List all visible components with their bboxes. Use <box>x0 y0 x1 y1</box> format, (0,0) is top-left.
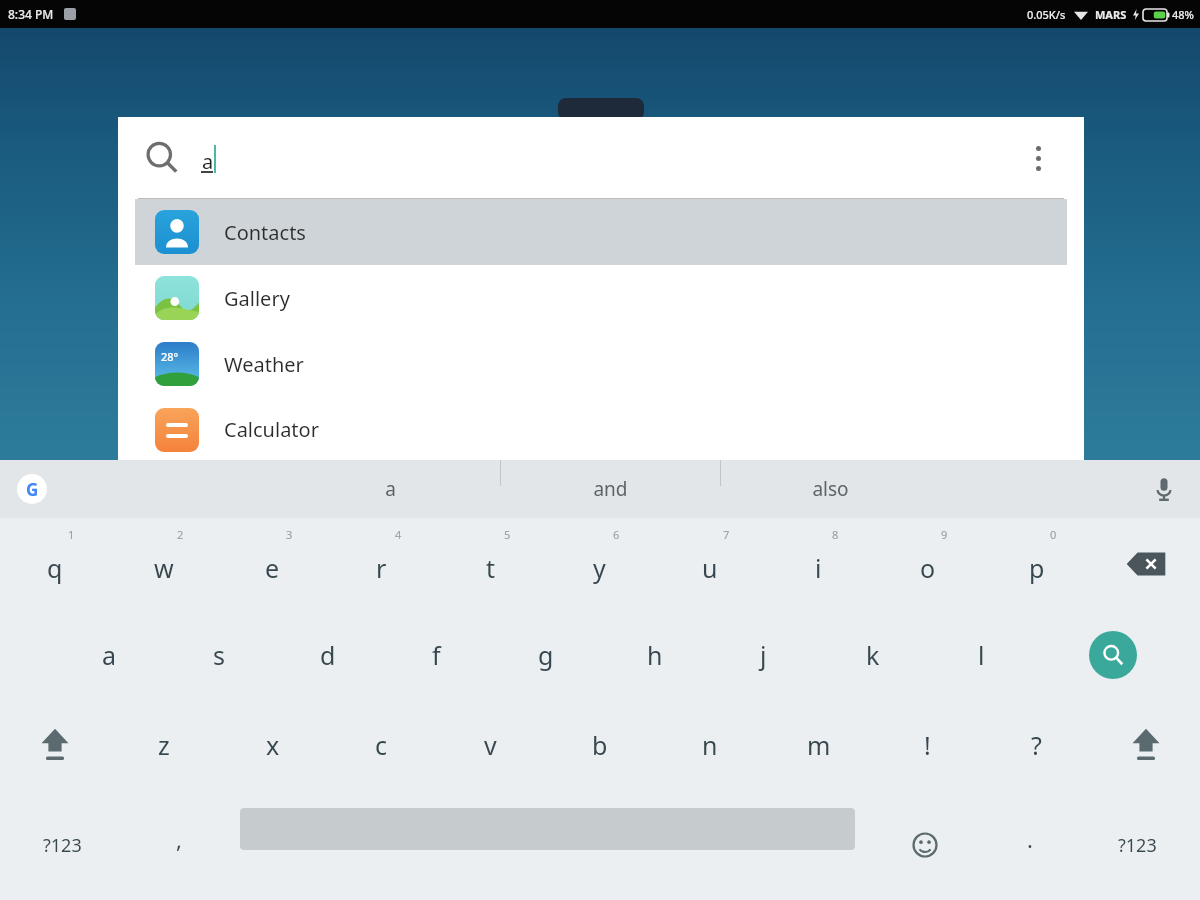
staticText: o <box>920 551 936 585</box>
staticText: t <box>486 551 496 585</box>
staticText: z <box>158 728 170 762</box>
button[interactable]: g <box>491 610 600 700</box>
staticText: 28° <box>161 349 179 364</box>
staticText: l <box>978 638 985 672</box>
button[interactable]: More options <box>1030 140 1047 177</box>
staticText: and <box>593 476 628 502</box>
staticText: j <box>760 638 767 672</box>
staticText: r <box>376 551 387 585</box>
button[interactable]: l <box>927 610 1036 700</box>
button[interactable]: p <box>982 518 1091 610</box>
staticText: Weather <box>224 351 304 378</box>
staticText: s <box>213 638 225 672</box>
staticText: a <box>385 476 396 502</box>
staticText: e <box>265 551 280 585</box>
button[interactable]: c <box>327 700 436 790</box>
staticText: p <box>1029 551 1045 585</box>
staticText: y <box>593 551 606 585</box>
staticText: 48% <box>1172 7 1194 22</box>
button[interactable]: Search <box>1058 610 1167 700</box>
other: Search <box>145 141 179 175</box>
button[interactable]: u <box>655 518 764 610</box>
button[interactable]: h <box>600 610 709 700</box>
staticText: Gallery <box>224 285 290 312</box>
staticText: i <box>815 551 822 585</box>
staticText: also <box>812 476 849 502</box>
button[interactable]: q <box>0 518 109 610</box>
staticText: ! <box>924 728 931 762</box>
staticText: MARS <box>1095 7 1127 22</box>
button[interactable]: m <box>764 700 873 790</box>
button[interactable]: v <box>436 700 545 790</box>
button[interactable]: z <box>109 700 218 790</box>
staticText: , <box>176 824 182 854</box>
button[interactable]: ?123 <box>1075 790 1200 900</box>
staticText: 0 <box>1050 527 1057 542</box>
button[interactable]: also <box>721 460 940 518</box>
staticText: . <box>1027 824 1033 854</box>
button[interactable]: Contacts <box>135 199 1067 265</box>
staticText: 3 <box>286 527 293 542</box>
button[interactable]: Gallery <box>135 265 1067 331</box>
staticText: n <box>702 728 718 762</box>
staticText: 8:34 PM <box>8 6 54 22</box>
button[interactable]: ?123 <box>0 790 124 900</box>
staticText: a <box>102 638 117 672</box>
button[interactable]: b <box>545 700 654 790</box>
button[interactable]: Emoji <box>880 790 970 900</box>
staticText: 8 <box>832 527 839 542</box>
staticText: 4 <box>395 527 402 542</box>
button[interactable]: f <box>382 610 491 700</box>
staticText: 6 <box>613 527 620 542</box>
staticText: b <box>592 728 608 762</box>
button[interactable]: Backspace <box>1091 518 1200 610</box>
button[interactable]: d <box>273 610 382 700</box>
button[interactable]: Shift <box>0 700 109 790</box>
button[interactable]: j <box>709 610 818 700</box>
staticText: g <box>538 638 554 672</box>
button[interactable]: a <box>55 610 164 700</box>
staticText: v <box>484 728 497 762</box>
staticText: ? <box>1031 728 1042 762</box>
button[interactable]: Google <box>17 474 47 504</box>
staticText: 0.05K/s <box>1027 7 1066 22</box>
staticText: d <box>320 638 336 672</box>
staticText: 7 <box>723 527 730 542</box>
staticText: k <box>866 638 880 672</box>
button[interactable]: r <box>327 518 436 610</box>
button[interactable]: n <box>655 700 764 790</box>
button[interactable]: s <box>164 610 273 700</box>
button[interactable]: w <box>109 518 218 610</box>
staticText: u <box>702 551 718 585</box>
button[interactable]: y <box>545 518 654 610</box>
staticText: w <box>154 551 174 585</box>
staticText: Calculator <box>224 416 319 443</box>
staticText: x <box>266 728 280 762</box>
staticText: q <box>47 551 63 585</box>
button[interactable]: k <box>818 610 927 700</box>
staticText: Contacts <box>224 219 306 246</box>
button[interactable]: t <box>436 518 545 610</box>
staticText: 1 <box>68 527 75 542</box>
button[interactable]: x <box>218 700 327 790</box>
staticText: G <box>26 478 39 501</box>
button[interactable]: Voice input <box>1156 477 1172 501</box>
button[interactable]: a <box>280 460 500 518</box>
staticText: h <box>647 638 663 672</box>
button[interactable]: , <box>124 790 234 900</box>
staticText: a <box>202 148 214 175</box>
button[interactable]: Calculator <box>135 397 1067 462</box>
staticText: f <box>432 638 441 672</box>
staticText: c <box>375 728 388 762</box>
button[interactable]: Shift <box>1091 700 1200 790</box>
staticText: 9 <box>941 527 948 542</box>
button[interactable]: e <box>218 518 327 610</box>
button[interactable]: ? <box>982 700 1091 790</box>
button[interactable]: 28° <box>135 331 1067 397</box>
button[interactable]: . <box>985 790 1075 900</box>
button[interactable]: o <box>873 518 982 610</box>
button[interactable]: i <box>764 518 873 610</box>
button[interactable]: and <box>501 460 720 518</box>
button[interactable]: ! <box>873 700 982 790</box>
